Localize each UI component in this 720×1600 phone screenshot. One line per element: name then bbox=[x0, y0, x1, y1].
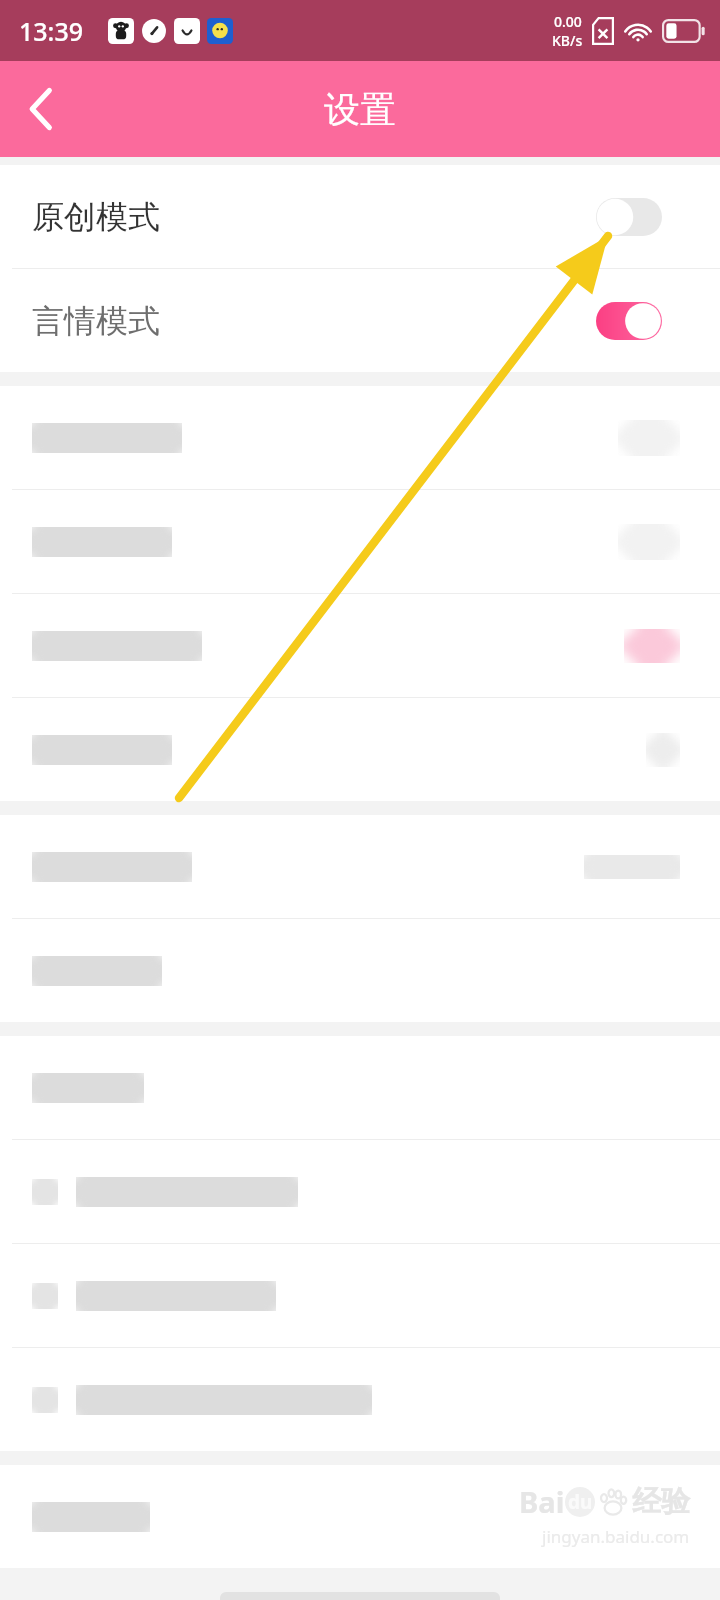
staticText: KB/s bbox=[552, 31, 583, 50]
button[interactable] bbox=[0, 1348, 720, 1451]
button[interactable]: 言情模式开关 bbox=[596, 302, 662, 340]
button[interactable] bbox=[0, 490, 720, 593]
staticText: 经验 bbox=[632, 1483, 690, 1520]
button[interactable] bbox=[0, 594, 720, 697]
button[interactable] bbox=[0, 1140, 720, 1243]
button[interactable] bbox=[0, 386, 720, 489]
staticText: du bbox=[568, 1489, 593, 1515]
button[interactable] bbox=[0, 815, 720, 918]
staticText: 0.00 bbox=[554, 12, 582, 31]
button[interactable] bbox=[0, 1036, 720, 1139]
staticText: 言情模式 bbox=[32, 301, 160, 341]
button[interactable] bbox=[0, 1244, 720, 1347]
staticText: 设置 bbox=[324, 87, 396, 132]
button[interactable]: 原创模式 bbox=[0, 165, 720, 268]
button[interactable] bbox=[0, 919, 720, 1022]
staticText: Bai bbox=[519, 1482, 565, 1521]
button[interactable] bbox=[0, 698, 720, 801]
staticText: 原创模式 bbox=[32, 197, 160, 237]
button[interactable]: 原创模式开关 bbox=[596, 198, 662, 236]
staticText: 13:39 bbox=[19, 14, 84, 48]
button[interactable]: 返回 bbox=[0, 61, 82, 157]
button[interactable]: 言情模式 bbox=[0, 269, 720, 372]
button[interactable] bbox=[0, 1465, 720, 1568]
staticText: jingyan.baidu.com bbox=[542, 1525, 690, 1548]
